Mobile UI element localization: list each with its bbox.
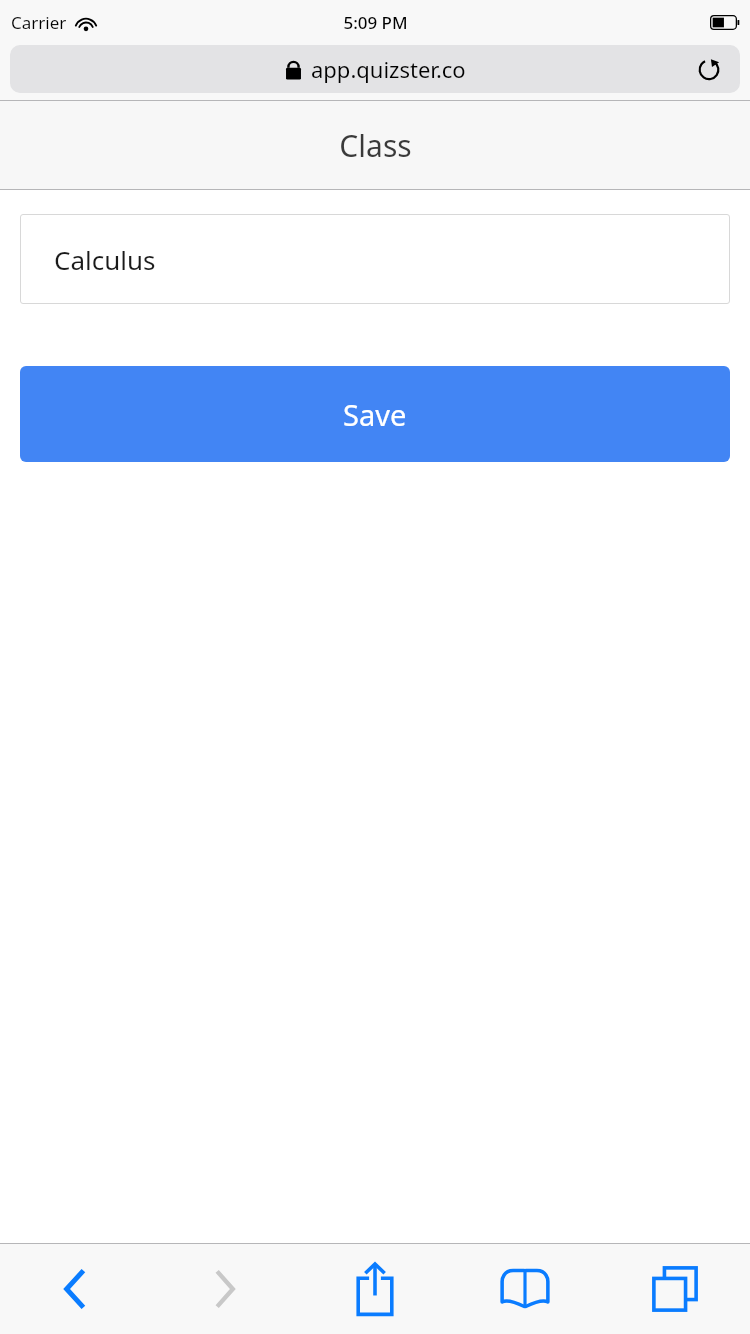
button[interactable]: Forward xyxy=(150,1244,300,1334)
button[interactable]: Calculus xyxy=(20,214,730,304)
button[interactable]: Save xyxy=(20,366,730,462)
staticText: 5:09 PM xyxy=(343,11,408,34)
button[interactable]: Share xyxy=(300,1244,450,1334)
staticText: app.quizster.co xyxy=(311,54,466,84)
staticText: Save xyxy=(343,395,407,434)
staticText: Carrier xyxy=(11,11,67,34)
button[interactable]: Back xyxy=(0,1244,150,1334)
button[interactable]: Tabs xyxy=(600,1244,750,1334)
staticText: Class xyxy=(339,125,412,166)
staticText: Calculus xyxy=(54,242,156,277)
button[interactable]: app.quizster.co xyxy=(10,45,740,93)
button[interactable]: Bookmarks xyxy=(450,1244,600,1334)
button[interactable]: Reload xyxy=(692,52,726,86)
